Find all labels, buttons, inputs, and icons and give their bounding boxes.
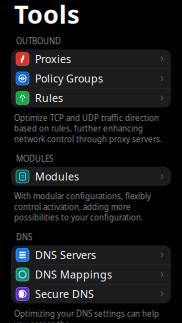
button[interactable]: Proxies bbox=[11, 49, 171, 68]
staticText: Rules bbox=[35, 91, 63, 105]
staticText: MODULES bbox=[16, 153, 53, 164]
button[interactable]: DNS Mappings bbox=[11, 265, 171, 284]
staticText: DNS bbox=[16, 232, 32, 242]
staticText: Optimizing your DNS settings can help yo… bbox=[14, 308, 159, 323]
button[interactable]: Policy Groups bbox=[11, 69, 171, 88]
staticText: OUTBOUND bbox=[16, 36, 61, 46]
staticText: Policy Groups bbox=[35, 71, 103, 86]
button[interactable]: DNS Servers bbox=[11, 245, 171, 264]
staticText: DNS Mappings bbox=[35, 267, 112, 282]
staticText: With modular configurations, flexibly co… bbox=[14, 191, 151, 223]
staticText: Proxies bbox=[35, 52, 71, 66]
button[interactable]: Secure DNS bbox=[11, 284, 171, 303]
staticText: Secure DNS bbox=[35, 287, 94, 301]
staticText: Tools bbox=[14, 0, 80, 31]
staticText: Optimize TCP and UDP traffic direction b… bbox=[14, 112, 162, 144]
staticText: DNS Servers bbox=[35, 248, 96, 262]
button[interactable]: Rules bbox=[11, 88, 171, 107]
button[interactable]: Modules bbox=[11, 167, 171, 186]
staticText: Modules bbox=[35, 169, 79, 184]
